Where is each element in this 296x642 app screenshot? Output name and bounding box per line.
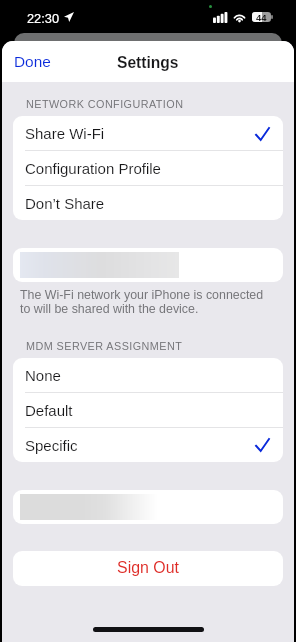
button[interactable]: None bbox=[13, 358, 283, 393]
staticText: Done bbox=[14, 53, 51, 70]
staticText: None bbox=[25, 367, 61, 384]
staticText: Default bbox=[25, 402, 73, 419]
button[interactable]: Specific bbox=[13, 428, 283, 462]
staticText: The Wi-Fi network your iPhone is connect… bbox=[20, 288, 268, 316]
staticText: MDM SERVER ASSIGNMENT bbox=[26, 340, 183, 352]
staticText: Configuration Profile bbox=[25, 160, 161, 177]
button[interactable] bbox=[20, 252, 179, 278]
staticText: Sign Out bbox=[117, 559, 179, 577]
button[interactable]: Share Wi-Fi bbox=[13, 116, 283, 151]
button[interactable]: Sign Out bbox=[13, 551, 283, 586]
staticText: NETWORK CONFIGURATION bbox=[26, 98, 184, 110]
button[interactable]: Don’t Share bbox=[13, 186, 283, 220]
staticText: Settings bbox=[117, 54, 179, 71]
button[interactable] bbox=[20, 494, 158, 520]
staticText: 22:30 bbox=[27, 11, 60, 25]
button[interactable]: Configuration Profile bbox=[13, 151, 283, 186]
button[interactable]: Default bbox=[13, 393, 283, 428]
staticText: Specific bbox=[25, 437, 78, 454]
staticText: Share Wi-Fi bbox=[25, 125, 105, 142]
button[interactable]: Done bbox=[10, 46, 55, 77]
staticText: Don’t Share bbox=[25, 195, 105, 212]
staticText: 44 bbox=[256, 12, 267, 22]
